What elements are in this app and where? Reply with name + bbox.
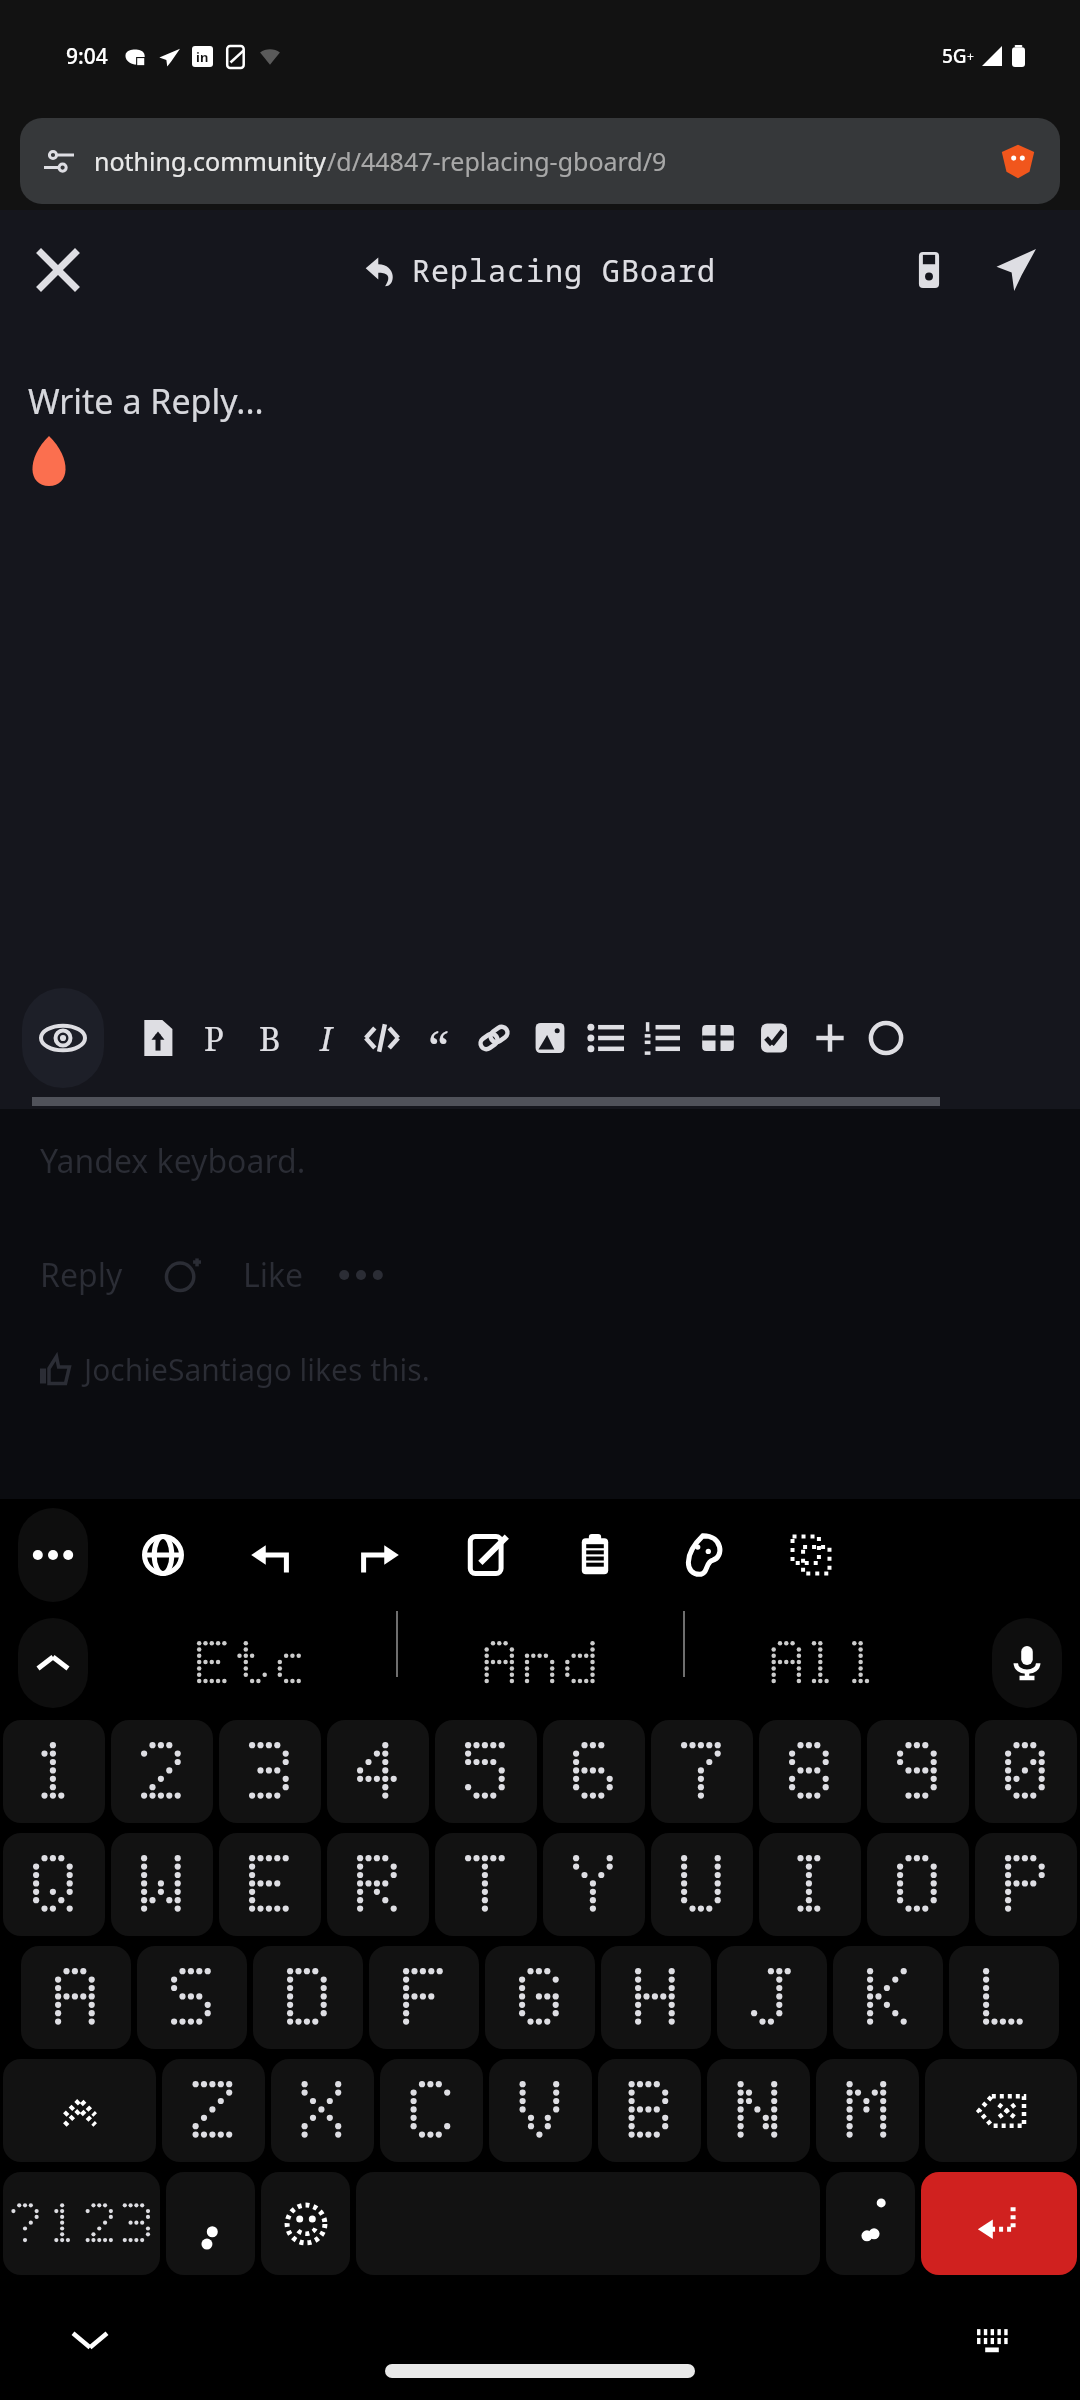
button[interactable]: Save draft [894,235,964,305]
button[interactable]: Write a Reply... [0,330,1080,979]
button[interactable]: ?123 [3,2172,160,2275]
other: Site settings [44,146,74,176]
button[interactable]: Home [385,2364,695,2378]
button[interactable] [975,1833,1077,1936]
staticText: B [259,1016,281,1061]
button[interactable]: Like [243,1253,304,1297]
staticText: nothing.community [94,144,327,178]
staticText: Replacing GBoard [412,250,716,291]
staticText: + [967,48,974,64]
other: Brave Shields [1000,143,1036,179]
button[interactable] [867,1720,969,1823]
button[interactable]: Voice input [992,1618,1062,1708]
button[interactable]: code [354,992,410,1084]
button[interactable]: table [690,992,746,1084]
button[interactable] [398,1611,683,1715]
button[interactable] [651,1833,753,1936]
button[interactable]: plus [802,992,858,1084]
button[interactable]: redo [342,1508,416,1602]
button[interactable]: Replacing GBoard [364,250,716,291]
button[interactable] [111,1833,213,1936]
button[interactable]: P [186,992,242,1084]
button[interactable] [219,1720,321,1823]
button[interactable] [651,1720,753,1823]
button[interactable] [543,1720,645,1823]
button[interactable]: Reply [40,1253,123,1297]
button[interactable] [111,1720,213,1823]
button[interactable] [166,2172,255,2275]
button[interactable]: palette [666,1508,740,1602]
button[interactable]: ol [634,992,690,1084]
button[interactable] [219,1833,321,1936]
button[interactable]: Preview [22,988,104,1088]
button[interactable] [975,1720,1077,1823]
button[interactable] [598,2059,701,2162]
button[interactable] [110,1611,396,1715]
button[interactable] [435,1833,537,1936]
button[interactable] [759,1720,861,1823]
button[interactable]: link [466,992,522,1084]
staticText: Write a Reply... [28,378,264,424]
staticText: /d/44847-replacing-gboard/9 [327,144,667,178]
button[interactable]: transform [774,1508,848,1602]
button[interactable] [3,1720,105,1823]
button[interactable] [435,1720,537,1823]
button[interactable]: Expand suggestions [18,1618,88,1708]
staticText: 5G [942,43,967,69]
button[interactable]: B [242,992,298,1084]
staticText: “ [428,1015,449,1078]
button[interactable] [327,1720,429,1823]
button[interactable]: Switch keyboard [962,2310,1022,2370]
button[interactable] [3,1833,105,1936]
button[interactable]: Site settings [20,118,1060,204]
staticText: 9:04 [66,42,108,71]
button[interactable] [253,1946,363,2049]
button[interactable] [271,2059,374,2162]
staticText: P [204,1016,224,1061]
button[interactable]: clock [858,992,914,1084]
button[interactable] [380,2059,483,2162]
button[interactable] [340,1268,382,1282]
button[interactable]: check [746,992,802,1084]
button[interactable] [489,2059,592,2162]
button[interactable]: quote [410,992,466,1084]
button[interactable]: enter [921,2172,1077,2275]
button[interactable] [949,1946,1059,2049]
button[interactable] [717,1946,827,2049]
button[interactable]: Hide keyboard [60,2310,120,2370]
button[interactable] [369,1946,479,2049]
button[interactable] [485,1946,595,2049]
button[interactable] [816,2059,919,2162]
button[interactable] [162,2059,265,2162]
button[interactable] [826,2172,915,2275]
button[interactable] [759,1833,861,1936]
staticText: I [320,1016,333,1061]
button[interactable]: shift [3,2059,156,2162]
button[interactable]: Send reply [980,235,1050,305]
button[interactable]: ul [578,992,634,1084]
button[interactable] [867,1833,969,1936]
button[interactable]: I [298,992,354,1084]
button[interactable]: More [18,1508,88,1602]
button[interactable]: undo [234,1508,308,1602]
button[interactable] [833,1946,943,2049]
button[interactable] [601,1946,711,2049]
button[interactable]: globe [126,1508,200,1602]
button[interactable]: emoji [261,2172,350,2275]
button[interactable] [685,1611,970,1715]
button[interactable] [21,1946,131,2049]
button[interactable]: image [522,992,578,1084]
button[interactable] [137,1946,247,2049]
button[interactable] [543,1833,645,1936]
button[interactable]: Close [20,232,96,308]
button[interactable]: edit [450,1508,524,1602]
button[interactable] [707,2059,810,2162]
staticText: in [196,48,209,66]
staticText: JochieSantiago likes this. [84,1349,430,1390]
staticText: Yandex keyboard. [40,1139,306,1183]
button[interactable] [327,1833,429,1936]
button[interactable]: clip [558,1508,632,1602]
button[interactable]: upload [130,992,186,1084]
button[interactable]: del [925,2059,1077,2162]
